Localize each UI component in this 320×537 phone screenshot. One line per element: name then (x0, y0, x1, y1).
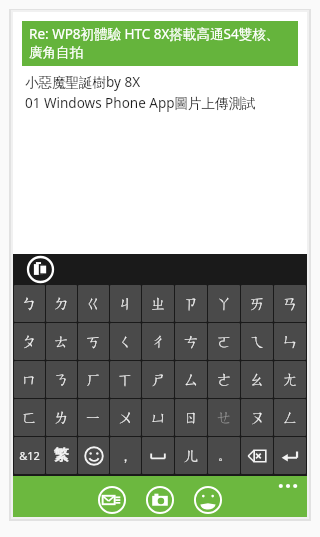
staticText: ㄙ (183, 370, 200, 390)
button[interactable]: Backspace (241, 437, 273, 474)
staticText: 。 (218, 448, 230, 463)
button[interactable]: More options (275, 479, 301, 493)
button[interactable]: ㄎ (78, 323, 109, 360)
button[interactable]: ㄛ (208, 323, 240, 360)
button[interactable]: ㄡ (241, 399, 273, 436)
button[interactable]: ㄒ (110, 361, 141, 398)
button[interactable]: ， (110, 437, 141, 474)
staticText: ， (119, 448, 132, 464)
staticText: ㄩ (150, 408, 167, 428)
staticText: ㄣ (282, 332, 299, 352)
button[interactable]: 繁 (46, 437, 77, 474)
staticText: ㄋ (53, 370, 70, 390)
staticText: ㄕ (150, 370, 167, 390)
staticText: ㄧ (85, 408, 102, 428)
button[interactable]: ㄢ (274, 285, 306, 322)
button[interactable]: ㄞ (241, 285, 273, 322)
button[interactable]: ㄖ (175, 399, 207, 436)
staticText: ㄟ (249, 332, 266, 352)
staticText: ㄌ (53, 408, 70, 428)
staticText: &12 (19, 448, 40, 463)
staticText: ㄢ (282, 294, 299, 314)
button[interactable]: ㄋ (46, 361, 77, 398)
staticText: ㄡ (249, 408, 266, 428)
staticText: ㄊ (53, 332, 70, 352)
button[interactable]: ㄔ (142, 323, 174, 360)
button[interactable]: ㄕ (142, 361, 174, 398)
staticText: ㄍ (85, 294, 102, 314)
button[interactable]: ㄥ (274, 399, 306, 436)
staticText: ㄠ (249, 370, 266, 390)
button[interactable]: ㄌ (46, 399, 77, 436)
button[interactable]: ㄧ (78, 399, 109, 436)
staticText: ㄇ (21, 370, 38, 390)
button[interactable]: ㄇ (14, 361, 45, 398)
button[interactable]: ㄏ (78, 361, 109, 398)
staticText: ㄞ (249, 294, 266, 314)
staticText: Re: WP8初體驗 HTC 8X搭載高通S4雙核、廣角自拍 (29, 25, 292, 61)
button[interactable]: Emoticon (193, 485, 223, 515)
button[interactable]: ㄩ (142, 399, 174, 436)
button[interactable]: ㄘ (175, 323, 207, 360)
staticText: ㄈ (21, 408, 38, 428)
staticText: ㄒ (117, 370, 134, 390)
button[interactable]: ㄓ (142, 285, 174, 322)
button[interactable]: Attach message (97, 485, 127, 515)
staticText: ㄛ (216, 332, 233, 352)
button[interactable]: ㄊ (46, 323, 77, 360)
staticText: ㄘ (183, 332, 200, 352)
button[interactable]: Emoji (78, 437, 109, 474)
button[interactable]: ㄆ (14, 323, 45, 360)
button[interactable]: ㄤ (274, 361, 306, 398)
staticText: ㄗ (183, 294, 200, 314)
staticText: 01 Windows Phone App圖片上傳測試 (25, 94, 256, 112)
button[interactable]: ㄗ (175, 285, 207, 322)
button[interactable]: 。 (208, 437, 240, 474)
staticText: ㄆ (21, 332, 38, 352)
staticText: 小惡魔聖誕樹by 8X (25, 73, 141, 91)
staticText: ㄑ (117, 332, 134, 352)
button[interactable]: ㄠ (241, 361, 273, 398)
staticText: ㄏ (85, 370, 102, 390)
staticText: ㄥ (282, 408, 299, 428)
button[interactable]: Camera (145, 485, 175, 515)
staticText: ㄤ (282, 370, 299, 390)
button[interactable]: ㄨ (110, 399, 141, 436)
button[interactable]: ㄟ (241, 323, 273, 360)
button[interactable]: &12 (14, 437, 45, 474)
button[interactable]: Space (142, 437, 174, 474)
staticText: ㄅ (21, 294, 38, 314)
button[interactable]: Enter (274, 437, 306, 474)
button[interactable]: ㄙ (175, 361, 207, 398)
button[interactable]: ㄜ (208, 361, 240, 398)
button[interactable]: ㄚ (208, 285, 240, 322)
staticText: ㄔ (150, 332, 167, 352)
button[interactable]: ㄍ (78, 285, 109, 322)
button[interactable]: Re: WP8初體驗 HTC 8X搭載高通S4雙核、廣角自拍 (22, 21, 298, 66)
staticText: ㄉ (53, 294, 70, 314)
staticText: ㄓ (150, 294, 167, 314)
button[interactable]: ㄣ (274, 323, 306, 360)
button[interactable]: ㄐ (110, 285, 141, 322)
button[interactable]: ㄝ (208, 399, 240, 436)
staticText: ㄖ (183, 408, 200, 428)
staticText: ㄜ (216, 370, 233, 390)
staticText: ㄝ (216, 408, 233, 428)
staticText: ㄦ (183, 446, 200, 466)
button[interactable]: ㄅ (14, 285, 45, 322)
staticText: ㄐ (117, 294, 134, 314)
button[interactable]: Clipboard (27, 256, 54, 283)
button[interactable]: ㄉ (46, 285, 77, 322)
staticText: 繁 (54, 446, 69, 465)
staticText: ㄚ (216, 294, 233, 314)
staticText: ㄨ (117, 408, 134, 428)
button[interactable]: ㄦ (175, 437, 207, 474)
staticText: ㄎ (85, 332, 102, 352)
button[interactable]: ㄈ (14, 399, 45, 436)
button[interactable]: ㄑ (110, 323, 141, 360)
